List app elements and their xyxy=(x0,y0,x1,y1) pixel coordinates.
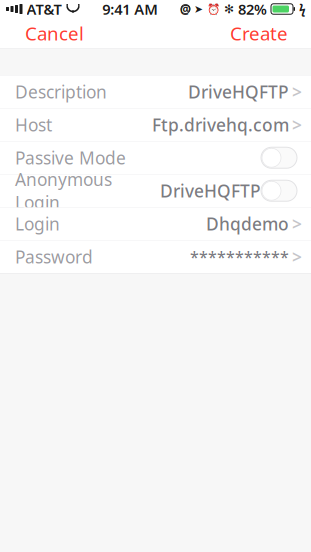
staticText: > xyxy=(292,80,302,103)
button[interactable]: Anonymous Login xyxy=(261,180,297,201)
staticText: > xyxy=(292,245,302,268)
staticText: ϟ xyxy=(299,1,306,17)
staticText: Anonymous Login xyxy=(15,168,112,214)
staticText: Host xyxy=(15,113,52,136)
staticText: Dhqdemo xyxy=(206,212,289,235)
button[interactable]: Description xyxy=(0,75,311,108)
staticText: DriveHQFTP xyxy=(188,80,289,103)
staticText: *********** xyxy=(190,246,289,267)
button[interactable]: Host xyxy=(0,108,311,141)
staticText: Description xyxy=(15,80,107,103)
staticText: Login xyxy=(15,212,60,235)
staticText: 9:41 AM xyxy=(102,0,158,19)
staticText: ⏰ xyxy=(207,3,220,15)
button[interactable]: Password xyxy=(0,240,311,273)
button[interactable]: Create xyxy=(220,15,298,52)
staticText: Password xyxy=(15,245,93,268)
button[interactable]: Cancel xyxy=(15,15,94,52)
staticText: ➤ xyxy=(194,3,203,15)
staticText: AT&T xyxy=(26,0,61,19)
staticText: Create xyxy=(230,21,288,46)
staticText: 82% xyxy=(238,0,267,19)
button[interactable]: Login xyxy=(0,207,311,240)
staticText: ✻ xyxy=(224,2,234,16)
staticText: > xyxy=(292,212,302,235)
staticText: > xyxy=(292,113,302,136)
button[interactable]: Passive Mode xyxy=(261,147,297,168)
staticText: Ftp.drivehq.com xyxy=(152,113,289,136)
staticText: DriveHQFTP xyxy=(160,179,261,202)
staticText: Cancel xyxy=(25,21,84,46)
staticText: Passive Mode xyxy=(15,146,126,169)
staticText: @ xyxy=(180,1,191,17)
